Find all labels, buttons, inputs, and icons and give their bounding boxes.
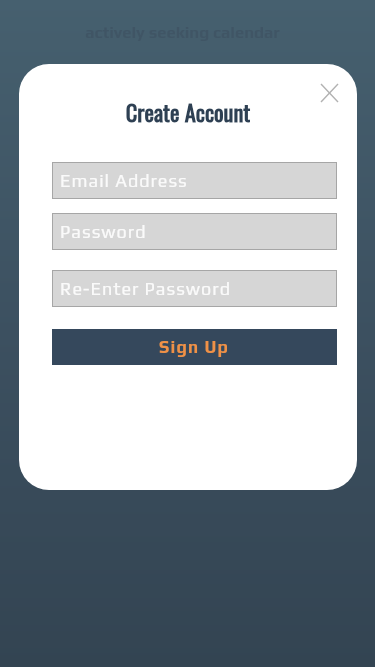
staticText: Create Account <box>19 95 357 128</box>
button[interactable] <box>313 77 345 109</box>
button[interactable]: Email Address <box>52 162 337 199</box>
button[interactable]: Password <box>52 213 337 250</box>
staticText: Re-Enter Password <box>60 278 231 299</box>
button[interactable]: Re-Enter Password <box>52 270 337 307</box>
button[interactable]: Sign Up <box>52 329 337 365</box>
staticText: Email Address <box>60 170 188 191</box>
staticText: Sign Up <box>159 337 230 357</box>
staticText: Password <box>60 221 147 242</box>
